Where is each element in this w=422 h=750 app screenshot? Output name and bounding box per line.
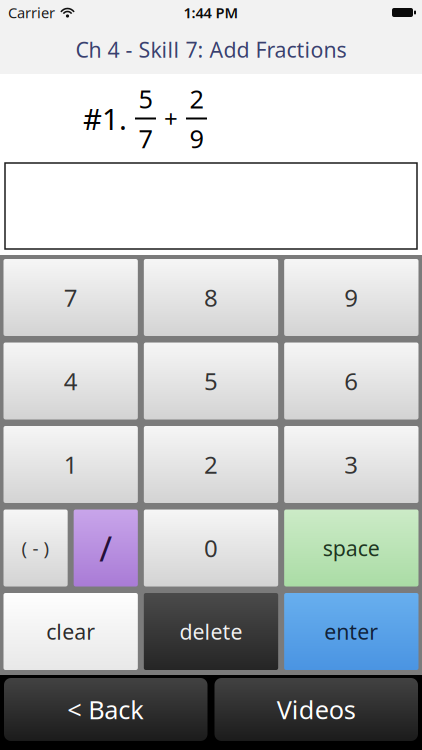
staticText: / [99,525,112,571]
staticText: < Back [67,693,144,726]
button[interactable]: 1 [3,426,138,503]
staticText: 1 [64,449,78,480]
button[interactable]: Videos [214,678,418,741]
button[interactable]: 3 [284,426,418,503]
button[interactable]: enter [284,593,418,670]
staticText: Videos [277,693,356,726]
button[interactable]: space [284,509,418,586]
button[interactable]: 7 [3,259,138,336]
staticText: 9 [344,282,358,313]
staticText: 9 [189,121,203,155]
staticText: 1:44 PM [183,3,238,22]
button[interactable]: clear [3,593,138,670]
button[interactable]: < Back [4,678,207,741]
button[interactable]: 2 [144,426,278,503]
button[interactable]: delete [144,593,278,670]
button[interactable]: / [74,509,138,586]
button[interactable]: Answer entry field [5,163,417,249]
staticText: 7 [64,282,78,313]
button[interactable]: 8 [144,259,278,336]
staticText: space [323,534,380,562]
staticText: 5 [138,82,152,115]
staticText: 4 [64,365,78,397]
staticText: 6 [344,365,358,397]
button[interactable]: 6 [284,342,418,419]
button[interactable]: 0 [144,509,278,586]
staticText: 2 [204,449,218,480]
staticText: 3 [344,449,358,480]
button[interactable]: 9 [284,259,418,336]
staticText: delete [179,617,242,646]
staticText: enter [324,617,378,646]
staticText: clear [46,617,95,646]
staticText: 0 [204,532,218,564]
staticText: ( - ) [22,536,50,560]
staticText: #1. [83,99,127,138]
staticText: 2 [189,82,203,115]
staticText: + [164,103,178,134]
staticText: 8 [204,282,218,313]
button[interactable]: 4 [3,342,138,419]
button[interactable]: ( - ) [3,509,68,586]
staticText: 5 [204,365,218,397]
staticText: Ch 4 - Skill 7: Add Fractions [75,35,346,64]
button[interactable]: 5 [144,342,278,419]
staticText: Carrier [8,3,55,22]
staticText: 7 [138,121,152,155]
